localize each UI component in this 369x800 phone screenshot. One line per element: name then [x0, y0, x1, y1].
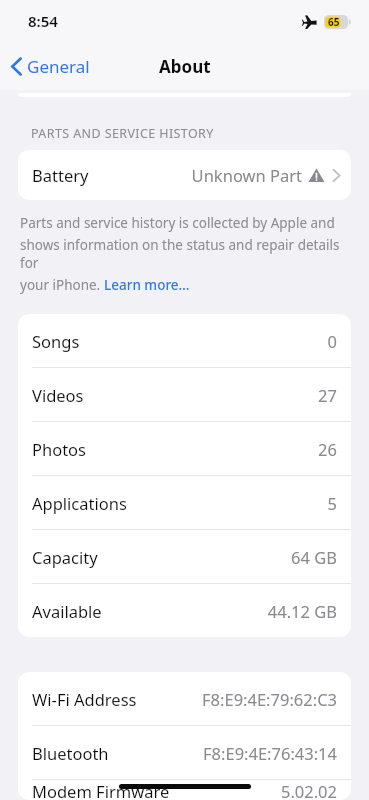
- button[interactable]: Songs: [18, 314, 351, 367]
- staticText: 65: [328, 15, 340, 29]
- button[interactable]: Videos: [18, 368, 351, 421]
- staticText: Learn more…: [104, 276, 190, 294]
- staticText: General: [27, 55, 90, 78]
- staticText: Photos: [32, 438, 87, 460]
- staticText: Songs: [32, 330, 80, 352]
- staticText: 27: [318, 384, 337, 406]
- button[interactable]: Available: [18, 584, 351, 637]
- staticText: Unknown Part: [191, 164, 302, 186]
- button[interactable]: Modem Firmware: [18, 780, 351, 800]
- staticText: 64 GB: [291, 546, 337, 568]
- staticText: Capacity: [32, 546, 98, 568]
- staticText: 26: [318, 438, 337, 460]
- staticText: 5: [327, 492, 337, 514]
- button[interactable]: Back: [7, 51, 94, 82]
- staticText: Battery: [32, 164, 89, 186]
- other: Back: [11, 57, 22, 76]
- staticText: F8:E9:4E:76:43:14: [203, 742, 337, 764]
- staticText: F8:E9:4E:79:62:C3: [202, 688, 337, 710]
- staticText: Parts and service history is collected b…: [20, 214, 335, 232]
- staticText: Videos: [32, 384, 84, 406]
- staticText: About: [159, 55, 211, 78]
- staticText: 5.02.02: [280, 780, 337, 800]
- staticText: your iPhone.: [20, 276, 104, 294]
- button[interactable]: Battery: [18, 150, 351, 200]
- staticText: PARTS AND SERVICE HISTORY: [31, 125, 214, 142]
- staticText: Wi-Fi Address: [32, 688, 137, 710]
- staticText: Available: [32, 600, 102, 622]
- other: More: [332, 168, 341, 183]
- staticText: shows information on the status and repa…: [20, 236, 349, 272]
- staticText: 0: [327, 330, 337, 352]
- staticText: Bluetooth: [32, 742, 109, 764]
- staticText: 8:54: [28, 11, 58, 31]
- button[interactable]: Capacity: [18, 530, 351, 583]
- staticText: Modem Firmware: [32, 780, 170, 800]
- staticText: 44.12 GB: [267, 600, 337, 622]
- button[interactable]: Learn more…: [104, 276, 190, 294]
- button[interactable]: Applications: [18, 476, 351, 529]
- button[interactable]: Photos: [18, 422, 351, 475]
- staticText: Applications: [32, 492, 127, 514]
- button[interactable]: Wi-Fi Address: [18, 672, 351, 725]
- button[interactable]: Bluetooth: [18, 726, 351, 779]
- other: Warning: [308, 167, 325, 184]
